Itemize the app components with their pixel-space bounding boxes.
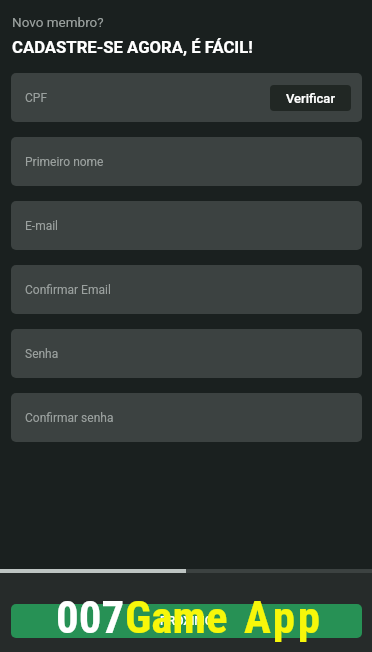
staticText: CPF bbox=[25, 91, 48, 105]
staticText: Verificar bbox=[286, 91, 335, 106]
staticText: E-mail bbox=[25, 219, 59, 233]
button[interactable]: CPF bbox=[11, 73, 362, 122]
button[interactable]: Confirmar senha bbox=[11, 393, 362, 442]
staticText: Primeiro nome bbox=[25, 155, 104, 169]
staticText: PRÓXIMO bbox=[160, 614, 214, 628]
button[interactable]: PRÓXIMO bbox=[11, 604, 362, 638]
button[interactable]: E-mail bbox=[11, 201, 362, 250]
staticText: CADASTRE-SE AGORA, É FÁCIL! bbox=[12, 38, 253, 58]
staticText: 007 bbox=[56, 591, 125, 644]
staticText: Confirmar senha bbox=[25, 411, 114, 425]
staticText: Confirmar Email bbox=[25, 283, 111, 297]
staticText: Senha bbox=[25, 347, 59, 361]
staticText: Novo membro? bbox=[12, 14, 104, 30]
button[interactable]: Senha bbox=[11, 329, 362, 378]
staticText: Game bbox=[125, 591, 228, 644]
button[interactable]: Confirmar Email bbox=[11, 265, 362, 314]
staticText: App bbox=[244, 591, 323, 644]
button[interactable]: Primeiro nome bbox=[11, 137, 362, 186]
button[interactable]: Verificar bbox=[270, 85, 351, 111]
